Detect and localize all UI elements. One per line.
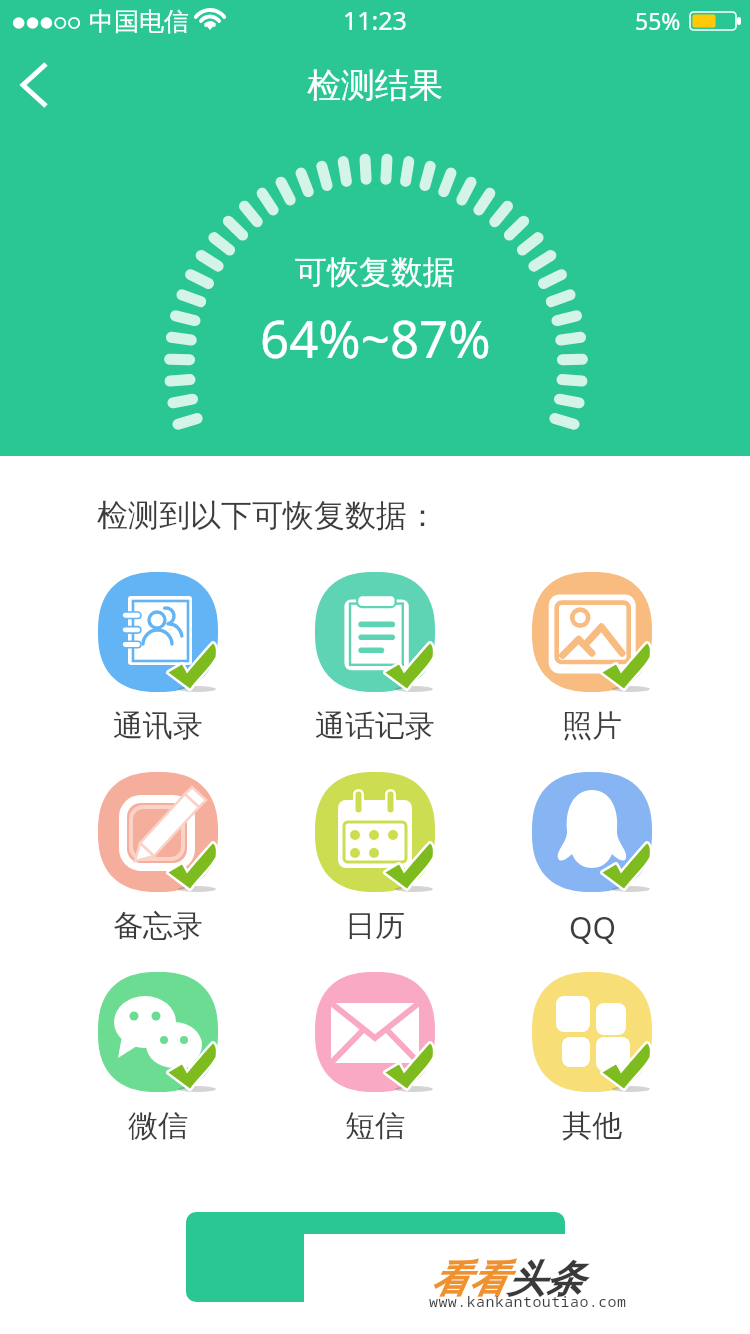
staticText: 通话记录 — [315, 707, 435, 745]
staticText: 11:23 — [343, 3, 407, 37]
button[interactable]: 通话记录 — [305, 572, 445, 745]
staticText: 检测到以下可恢复数据： — [97, 496, 438, 535]
staticText: 短信 — [345, 1107, 405, 1145]
staticText: 通讯录 — [113, 707, 203, 745]
staticText: 看看 — [431, 1255, 507, 1303]
staticText: 微信 — [128, 1107, 188, 1145]
staticText: 备忘录 — [113, 907, 203, 945]
button[interactable]: 微信 — [88, 972, 228, 1145]
staticText: 头条 — [507, 1255, 583, 1303]
staticText: 日历 — [345, 907, 405, 945]
button[interactable]: Back — [4, 50, 68, 120]
button[interactable]: 通讯录 — [88, 572, 228, 745]
button[interactable]: QQ — [522, 772, 662, 948]
button[interactable]: 备忘录 — [88, 772, 228, 945]
staticText: 检测结果 — [307, 64, 443, 107]
button[interactable]: 短信 — [305, 972, 445, 1145]
staticText: 64%~87% — [260, 303, 491, 372]
staticText: 照片 — [562, 707, 622, 745]
staticText: 中国电信 — [89, 6, 189, 37]
button[interactable]: 其他 — [522, 972, 662, 1145]
button[interactable] — [186, 1212, 565, 1302]
button[interactable]: 日历 — [305, 772, 445, 945]
button[interactable]: 照片 — [522, 572, 662, 745]
staticText: QQ — [569, 907, 616, 948]
staticText: www.kankantoutiao.com — [429, 1291, 627, 1311]
staticText: 可恢复数据 — [295, 252, 455, 292]
staticText: 55% — [635, 5, 681, 36]
staticText: 其他 — [562, 1107, 622, 1145]
